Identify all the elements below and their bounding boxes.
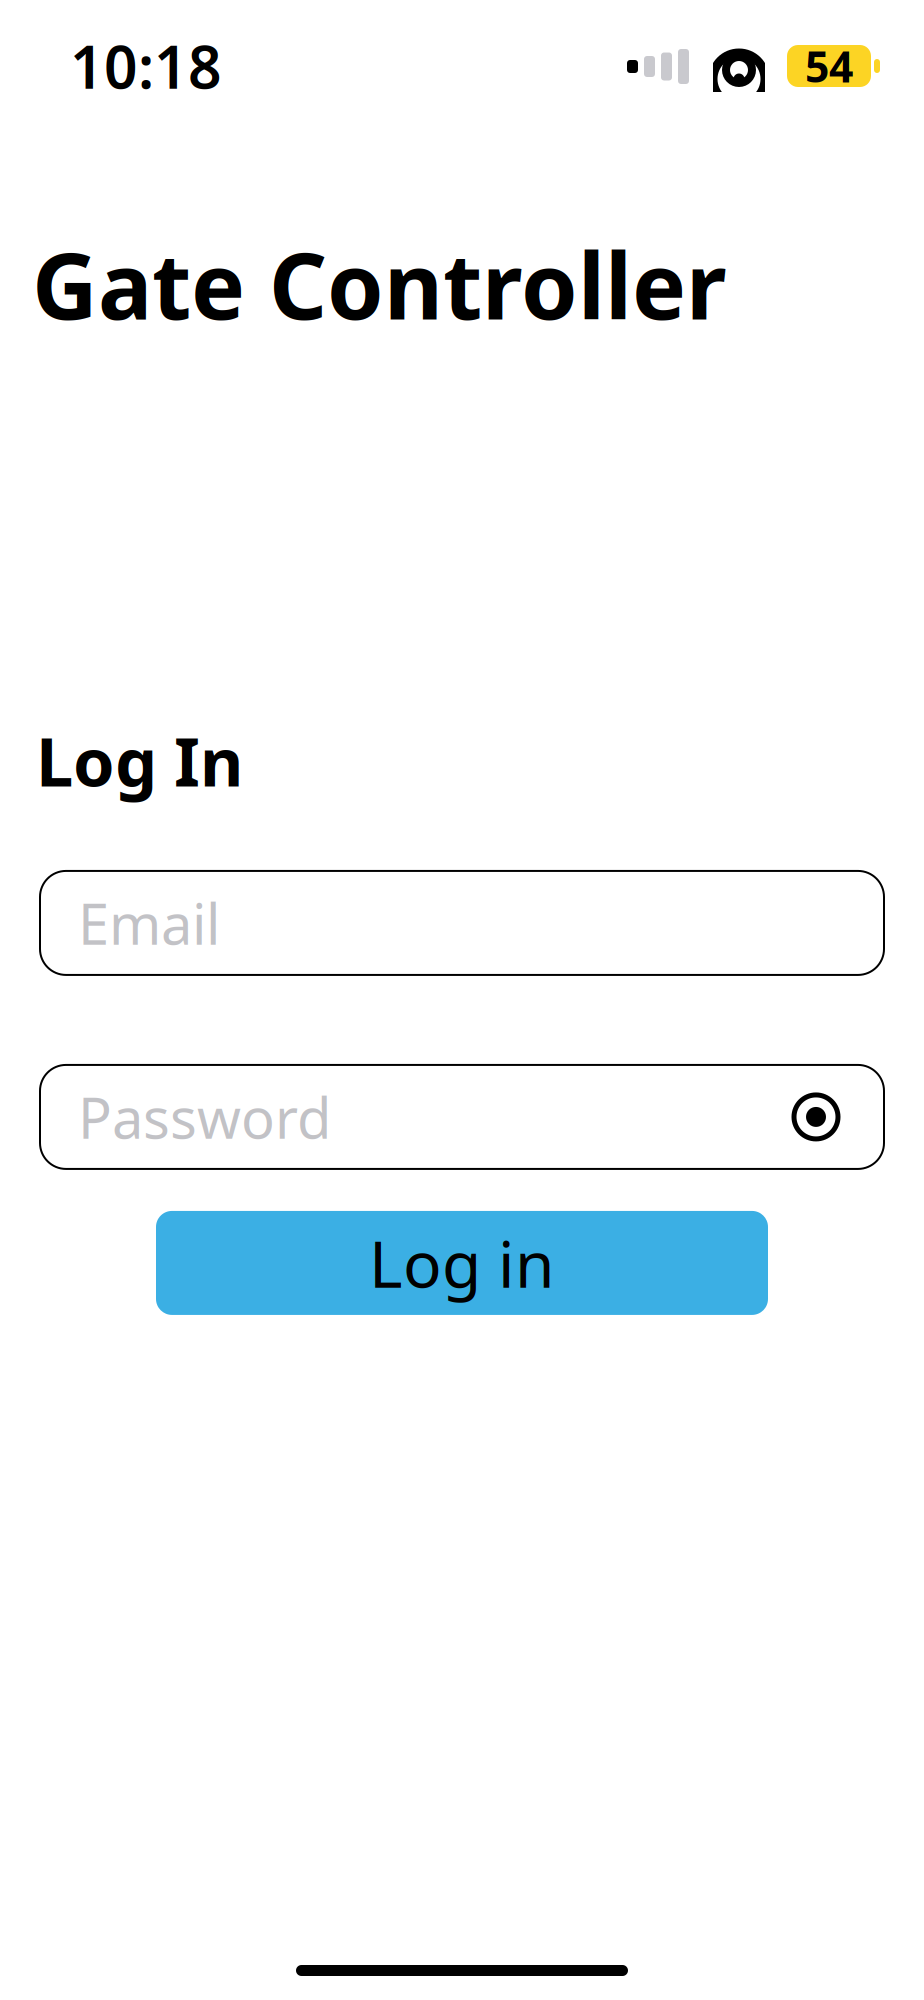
staticText: Email [78, 886, 220, 960]
staticText: 10:18 [70, 27, 222, 105]
button[interactable]: Log in [156, 1211, 768, 1315]
staticText: Password [78, 1080, 331, 1154]
button[interactable]: Password [40, 1065, 884, 1169]
staticText: Log In [36, 716, 243, 805]
staticText: Gate Controller [32, 224, 727, 344]
staticText: Log in [369, 1220, 555, 1305]
staticText: 54 [805, 38, 853, 94]
button[interactable]: Email [40, 871, 884, 975]
